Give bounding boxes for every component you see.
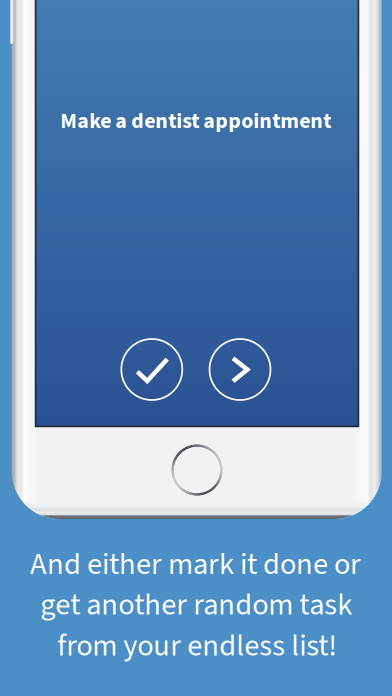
staticText: from your endless list! <box>57 624 337 668</box>
staticText: Make a dentist appointment <box>60 106 331 137</box>
button[interactable]: Next random task <box>209 339 270 400</box>
button[interactable]: Mark task done <box>121 339 182 400</box>
staticText: And either mark it done or <box>30 543 361 586</box>
staticText: get another random task <box>40 583 352 627</box>
